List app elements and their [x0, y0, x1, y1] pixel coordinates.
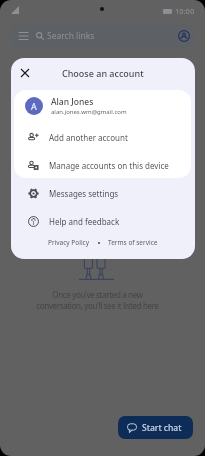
- button[interactable]: Terms of service: [108, 238, 158, 247]
- staticText: Help and feedback: [49, 216, 120, 227]
- button[interactable]: Help and feedback: [11, 207, 195, 235]
- staticText: Once you've started a new conversation, …: [32, 289, 163, 311]
- staticText: 10:00: [175, 6, 195, 16]
- button[interactable]: Start chat: [118, 416, 193, 439]
- staticText: Messages settings: [49, 188, 119, 199]
- other: Open navigation menu: [19, 32, 28, 40]
- staticText: A: [31, 100, 37, 112]
- staticText: Start chat: [142, 422, 182, 434]
- button[interactable]: Open navigation menu: [9, 24, 196, 48]
- staticText: Manage accounts on this device: [49, 160, 169, 171]
- button[interactable]: Privacy Policy: [48, 238, 90, 247]
- staticText: alan.jones.wm@gmail.com: [51, 108, 127, 116]
- other: Account: [178, 30, 190, 42]
- staticText: Choose an account: [62, 67, 144, 79]
- staticText: Add another account: [49, 132, 128, 143]
- button[interactable]: Close: [15, 63, 34, 82]
- button[interactable]: A: [14, 90, 191, 122]
- staticText: Search links: [47, 30, 95, 42]
- staticText: Alan Jones: [51, 96, 94, 108]
- button[interactable]: Manage accounts on this device: [11, 151, 195, 179]
- button[interactable]: Messages settings: [11, 179, 195, 207]
- button[interactable]: Add another account: [11, 123, 195, 151]
